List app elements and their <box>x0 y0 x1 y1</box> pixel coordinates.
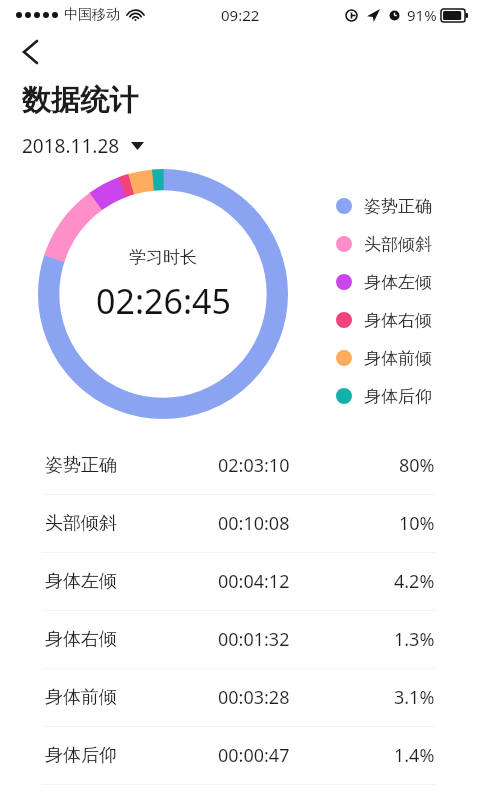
button[interactable]: 身体左倾 <box>0 553 480 611</box>
staticText: 数据统计 <box>22 82 138 119</box>
button[interactable]: 身体后仰 <box>0 727 480 785</box>
button[interactable]: 姿势正确 <box>336 187 432 225</box>
button[interactable]: 身体后仰 <box>336 377 432 415</box>
button[interactable]: 2018.11.28 <box>22 133 144 159</box>
staticText: 00:03:28 <box>218 685 290 710</box>
staticText: 00:10:08 <box>218 511 290 536</box>
staticText: 10% <box>399 511 435 536</box>
staticText: 学习时长 <box>129 247 197 268</box>
staticText: 姿势正确 <box>45 454 117 477</box>
staticText: 身体右倾 <box>364 310 432 331</box>
staticText: 中国移动 <box>64 6 120 24</box>
staticText: 00:01:32 <box>218 627 290 652</box>
staticText: 身体后仰 <box>364 386 432 407</box>
staticText: 头部倾斜 <box>364 234 432 255</box>
button[interactable]: 身体左倾 <box>336 263 432 301</box>
staticText: 身体右倾 <box>45 628 117 651</box>
staticText: 4.2% <box>394 569 435 594</box>
staticText: 姿势正确 <box>364 196 432 217</box>
button[interactable]: 身体右倾 <box>0 611 480 669</box>
button[interactable]: 身体前倾 <box>336 339 432 377</box>
button[interactable]: Back <box>8 30 52 74</box>
staticText: 91% <box>407 5 437 25</box>
staticText: 1.3% <box>394 627 435 652</box>
staticText: 02:26:45 <box>96 278 231 324</box>
staticText: 头部倾斜 <box>45 512 117 535</box>
staticText: 身体前倾 <box>364 348 432 369</box>
button[interactable]: 身体前倾 <box>0 669 480 727</box>
staticText: 80% <box>399 453 435 478</box>
staticText: 身体左倾 <box>364 272 432 293</box>
staticText: 00:00:47 <box>218 743 290 768</box>
button[interactable]: 头部倾斜 <box>0 495 480 553</box>
button[interactable]: 身体右倾 <box>336 301 432 339</box>
staticText: 身体前倾 <box>45 686 117 709</box>
staticText: 02:03:10 <box>218 453 290 478</box>
staticText: 身体左倾 <box>45 570 117 593</box>
staticText: 身体后仰 <box>45 744 117 767</box>
staticText: 3.1% <box>394 685 435 710</box>
button[interactable]: 姿势正确 <box>0 437 480 495</box>
staticText: 2018.11.28 <box>22 133 120 159</box>
staticText: 09:22 <box>221 5 260 25</box>
staticText: 1.4% <box>394 743 435 768</box>
staticText: 00:04:12 <box>218 569 290 594</box>
button[interactable]: 头部倾斜 <box>336 225 432 263</box>
